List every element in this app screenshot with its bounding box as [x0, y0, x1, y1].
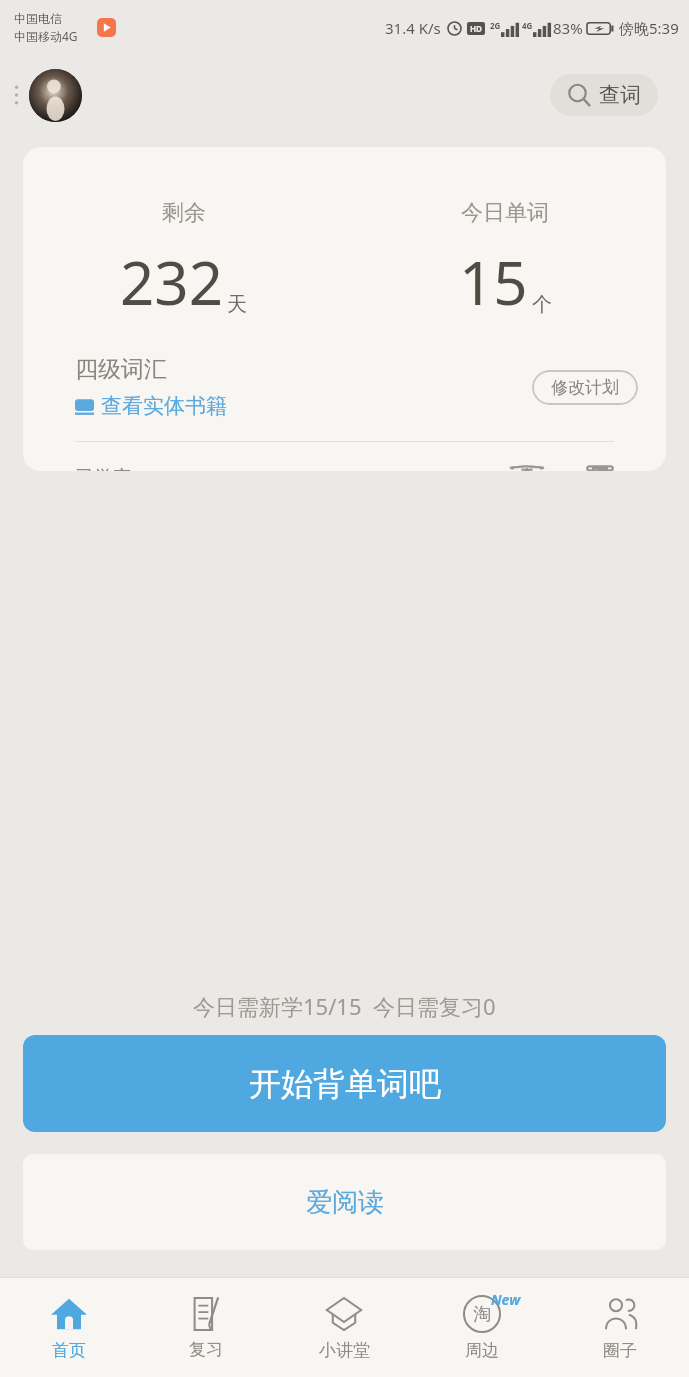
button[interactable]: 修改计划: [532, 370, 638, 405]
button[interactable]: 下载离线包: [490, 466, 564, 471]
staticText: 查看实体书籍: [101, 393, 227, 419]
staticText: 小讲堂: [319, 1340, 370, 1361]
staticText: 中国移动4G: [14, 28, 78, 44]
staticText: 首页: [52, 1340, 86, 1361]
button[interactable]: 查看实体书籍: [75, 393, 227, 419]
staticText: 83%: [553, 18, 583, 38]
staticText: 淘: [473, 1303, 491, 1326]
staticText: 爱阅读: [306, 1186, 384, 1219]
staticText: 中国电信: [14, 11, 62, 26]
staticText: 个: [532, 292, 552, 317]
staticText: 复习: [189, 1339, 223, 1360]
button[interactable]: 爱阅读: [23, 1154, 666, 1250]
staticText: 开始背单词吧: [249, 1064, 441, 1104]
button[interactable]: 圈子: [551, 1278, 689, 1377]
staticText: 今日需新学15/15 今日需复习0: [193, 991, 496, 1021]
staticText: 2G: [490, 20, 501, 31]
button[interactable]: 单词列表: [570, 466, 630, 471]
staticText: New: [491, 1290, 521, 1309]
button[interactable]: Profile: [29, 69, 82, 122]
button[interactable]: 淘: [413, 1278, 551, 1377]
staticText: 今日单词: [461, 199, 549, 227]
button[interactable]: 小讲堂: [275, 1278, 413, 1377]
staticText: 圈子: [603, 1340, 637, 1361]
staticText: 已学完: [75, 466, 132, 471]
staticText: HD: [470, 23, 482, 34]
staticText: 周边: [465, 1340, 499, 1361]
staticText: 232: [120, 241, 223, 323]
staticText: 查词: [599, 82, 641, 108]
staticText: 31.4 K/s: [385, 18, 441, 38]
button[interactable]: 查词: [550, 74, 658, 116]
button[interactable]: 首页: [0, 1278, 137, 1377]
staticText: 修改计划: [551, 377, 619, 398]
staticText: 15: [459, 241, 528, 323]
button[interactable]: 复习: [137, 1278, 275, 1377]
button[interactable]: 开始背单词吧: [23, 1035, 666, 1132]
staticText: 4G: [522, 20, 533, 31]
staticText: 天: [227, 292, 247, 317]
staticText: 四级词汇: [75, 355, 167, 384]
staticText: 傍晚5:39: [619, 18, 679, 38]
staticText: 剩余: [162, 199, 206, 227]
